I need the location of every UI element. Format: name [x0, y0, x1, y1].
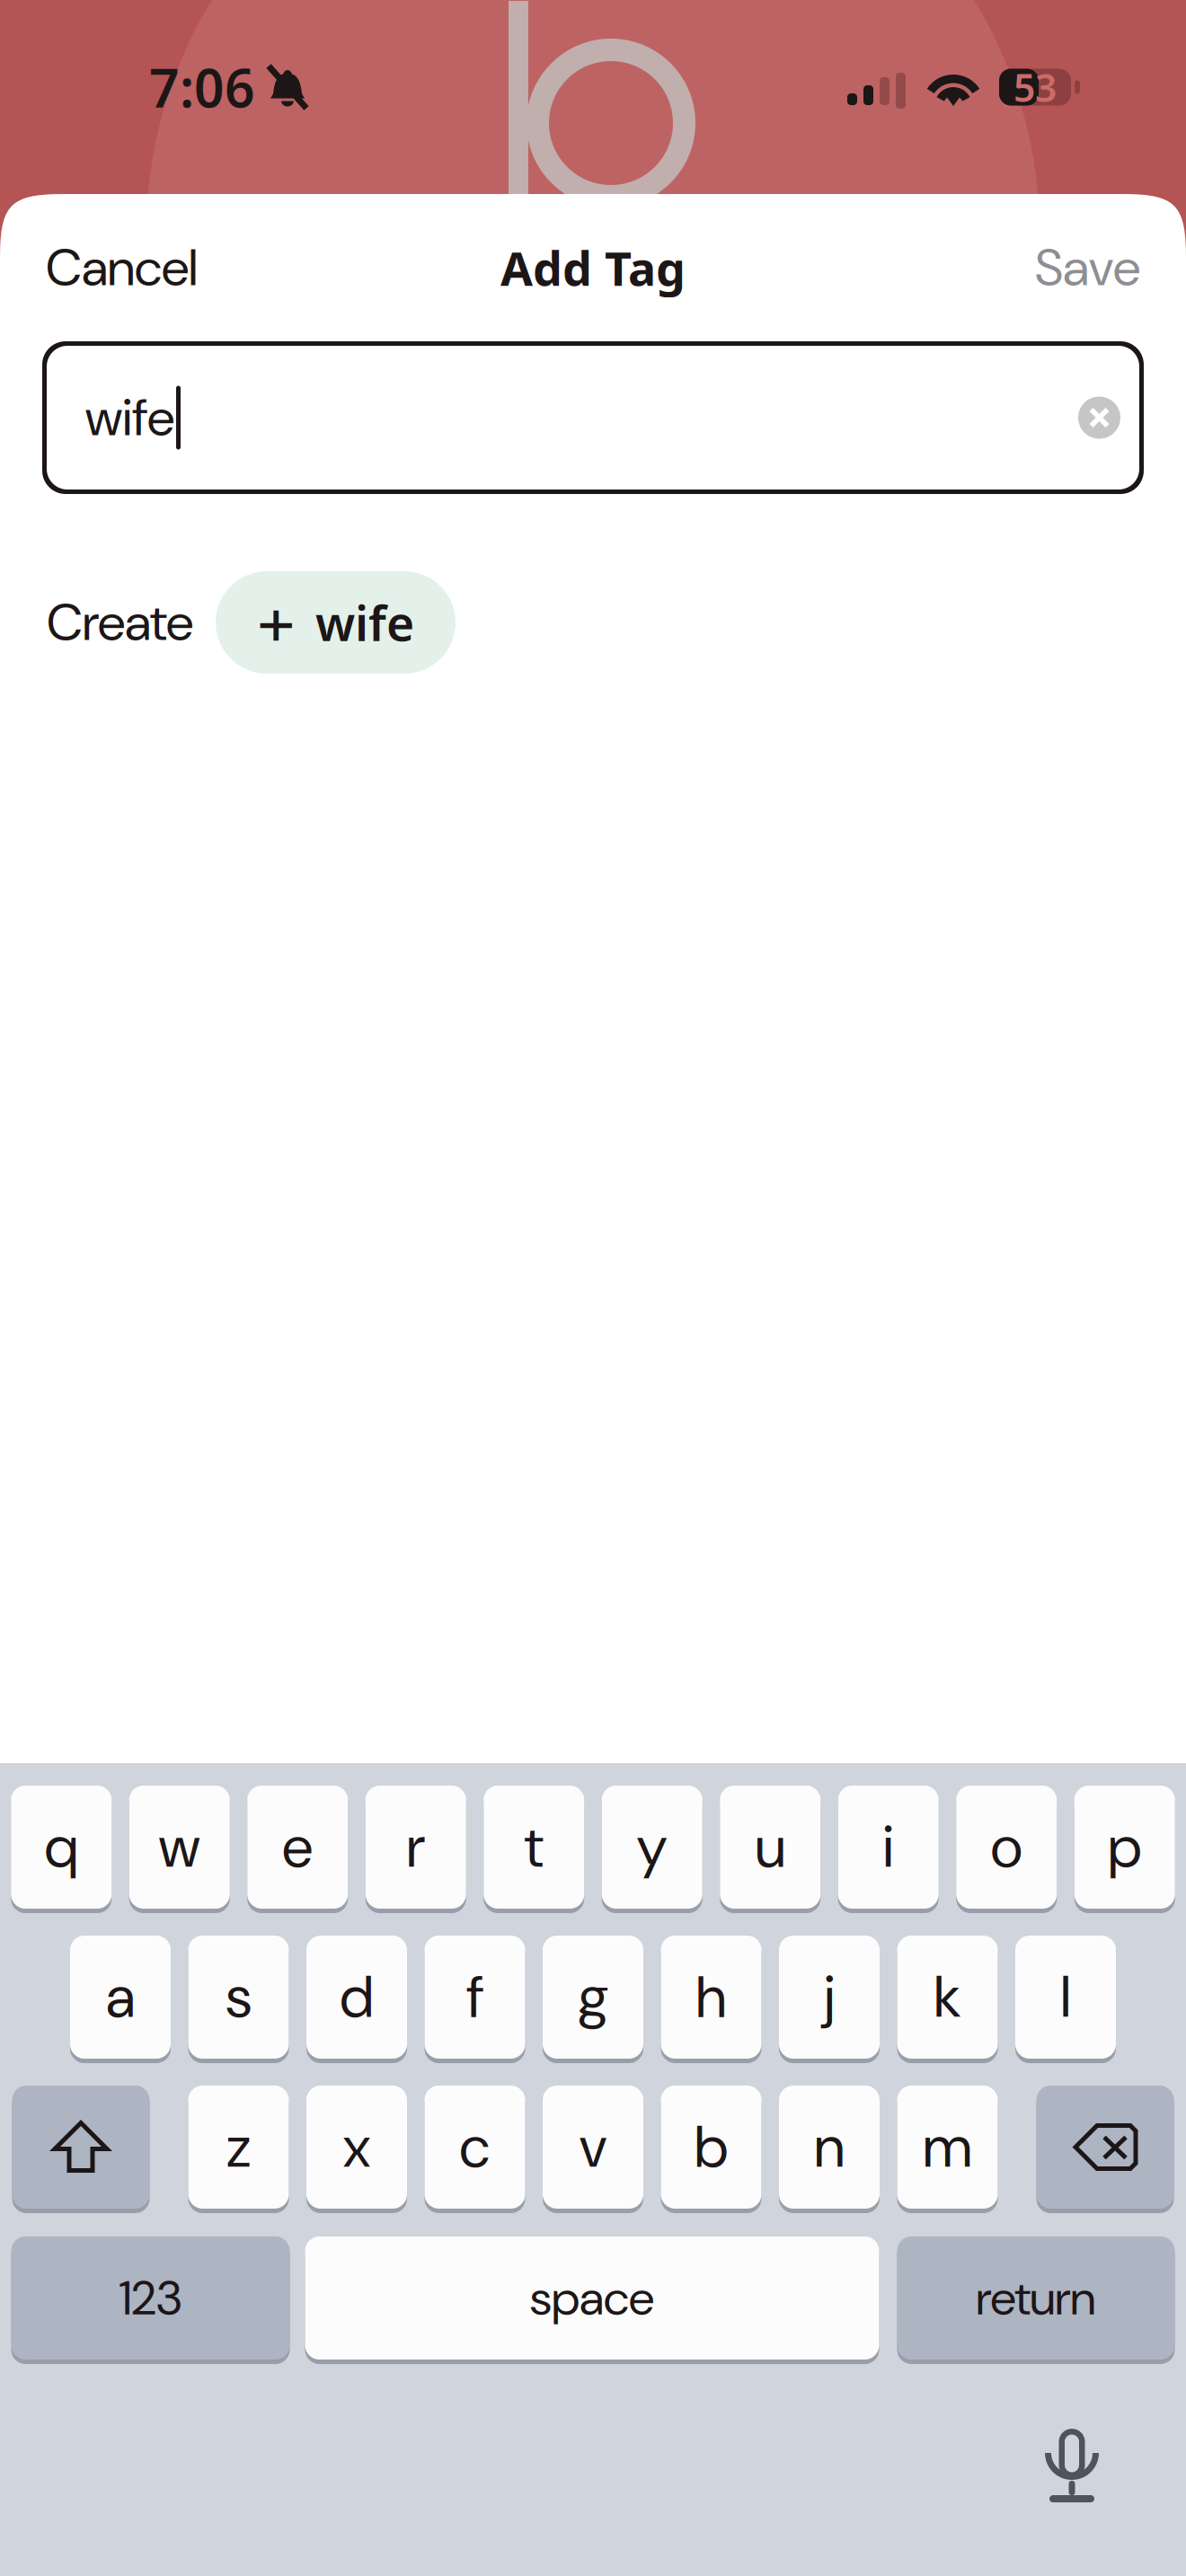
button[interactable]: f	[425, 1936, 525, 2063]
staticText: Create	[47, 589, 193, 656]
button[interactable]: n	[779, 2086, 880, 2213]
staticText: n	[814, 2110, 844, 2184]
staticText: Cancel	[46, 234, 198, 301]
staticText: Save	[1035, 234, 1140, 301]
staticText: w	[159, 1810, 200, 1884]
staticText: i	[882, 1810, 894, 1884]
button[interactable]: Save	[1021, 218, 1155, 317]
button[interactable]: m	[897, 2086, 998, 2213]
button[interactable]: u	[720, 1786, 820, 1913]
button[interactable]: g	[543, 1936, 643, 2063]
staticText: l	[1061, 1960, 1071, 2034]
button[interactable]: r	[366, 1786, 466, 1913]
button[interactable]: q	[11, 1786, 112, 1913]
button[interactable]: Shift	[12, 2086, 150, 2213]
staticText: space	[530, 2267, 654, 2329]
staticText: m	[923, 2110, 972, 2184]
staticText: q	[45, 1810, 78, 1884]
staticText: 7:06	[149, 51, 255, 123]
button[interactable]: c	[425, 2086, 525, 2213]
button[interactable]: s	[188, 1936, 289, 2063]
staticText: s	[226, 1960, 251, 2034]
staticText: v	[580, 2110, 606, 2184]
button[interactable]: h	[661, 1936, 761, 2063]
staticText: g	[577, 1960, 609, 2034]
button[interactable]: x	[306, 2086, 407, 2213]
staticText: c	[460, 2110, 490, 2184]
staticText: +	[257, 577, 296, 668]
button[interactable]: p	[1074, 1786, 1175, 1913]
button[interactable]: Dictate	[1020, 2404, 1124, 2531]
staticText: Add Tag	[500, 236, 686, 299]
staticText: y	[637, 1810, 667, 1884]
staticText: return	[976, 2267, 1096, 2329]
staticText: b	[695, 2110, 728, 2184]
button[interactable]: b	[661, 2086, 761, 2213]
button[interactable]: Delete	[1036, 2086, 1174, 2213]
button[interactable]: k	[897, 1936, 998, 2063]
staticText: 53	[1013, 61, 1057, 113]
button[interactable]: j	[779, 1936, 880, 2063]
staticText: d	[340, 1960, 373, 2034]
button[interactable]: l	[1015, 1936, 1116, 2063]
button[interactable]: z	[188, 2086, 289, 2213]
button[interactable]: o	[956, 1786, 1057, 1913]
button[interactable]: return	[897, 2236, 1175, 2364]
button[interactable]: d	[306, 1936, 407, 2063]
button[interactable]: Clear text	[1078, 397, 1120, 439]
button[interactable]: Cancel	[31, 218, 212, 317]
staticText: h	[696, 1960, 726, 2034]
staticText: p	[1108, 1810, 1141, 1884]
button[interactable]: i	[838, 1786, 939, 1913]
button[interactable]: a	[70, 1936, 171, 2063]
button[interactable]: y	[602, 1786, 702, 1913]
staticText: 123	[119, 2267, 182, 2329]
button[interactable]: space	[305, 2236, 879, 2364]
button[interactable]: v	[543, 2086, 643, 2213]
staticText: u	[755, 1810, 785, 1884]
button[interactable]: e	[247, 1786, 348, 1913]
staticText: x	[343, 2110, 370, 2184]
staticText: t	[525, 1810, 543, 1884]
staticText: r	[407, 1810, 425, 1884]
button[interactable]: w	[129, 1786, 230, 1913]
button[interactable]: 123	[11, 2236, 290, 2364]
button[interactable]: t	[484, 1786, 584, 1913]
staticText: wife	[85, 384, 174, 451]
staticText: wife	[315, 590, 414, 655]
staticText: o	[991, 1810, 1022, 1884]
staticText: e	[282, 1810, 313, 1884]
staticText: a	[106, 1960, 135, 2034]
staticText: f	[466, 1960, 483, 2034]
staticText: z	[226, 2110, 251, 2184]
staticText: j	[823, 1960, 835, 2034]
staticText: k	[934, 1960, 961, 2034]
button[interactable]: +	[216, 571, 456, 674]
